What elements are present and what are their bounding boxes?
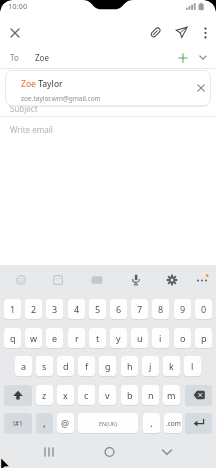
staticText: 6 xyxy=(116,303,122,315)
button[interactable] xyxy=(50,272,66,288)
button[interactable] xyxy=(148,25,163,40)
staticText: x xyxy=(63,389,68,401)
staticText: p xyxy=(201,332,207,344)
button[interactable]: r xyxy=(68,328,85,348)
button[interactable]: l xyxy=(184,356,201,376)
button[interactable] xyxy=(36,443,62,461)
staticText: e xyxy=(52,332,58,344)
staticText: 0 xyxy=(201,303,207,315)
staticText: u xyxy=(137,332,143,344)
staticText: o xyxy=(180,332,186,344)
button[interactable] xyxy=(196,50,210,64)
button[interactable]: o xyxy=(174,328,191,348)
button[interactable]: u xyxy=(131,328,148,348)
button[interactable]: m xyxy=(163,385,180,405)
button[interactable]: 9 xyxy=(174,299,191,319)
button[interactable]: 3 xyxy=(46,299,63,319)
button[interactable]: 2 xyxy=(25,299,42,319)
button[interactable] xyxy=(164,272,180,288)
button[interactable]: v xyxy=(99,385,116,405)
button[interactable]: y xyxy=(110,328,127,348)
button[interactable]: 8 xyxy=(152,299,169,319)
button[interactable] xyxy=(200,25,211,41)
button[interactable] xyxy=(185,385,212,405)
staticText: s xyxy=(42,360,47,372)
staticText: Subject xyxy=(10,103,38,114)
button[interactable]: p xyxy=(195,328,212,348)
staticText: 8 xyxy=(158,303,164,315)
button[interactable]: q xyxy=(4,328,21,348)
staticText: v xyxy=(105,389,110,401)
button[interactable]: g xyxy=(99,356,116,376)
staticText: g xyxy=(105,360,111,372)
button[interactable]: 6 xyxy=(110,299,127,319)
button[interactable]: . xyxy=(143,413,160,433)
staticText: a xyxy=(21,360,27,372)
button[interactable]: .com xyxy=(164,413,182,433)
staticText: . xyxy=(150,416,153,430)
staticText: 5 xyxy=(95,303,101,315)
button[interactable] xyxy=(89,272,105,288)
button[interactable]: k xyxy=(163,356,180,376)
button[interactable]: a xyxy=(15,356,32,376)
button[interactable]: j xyxy=(142,356,159,376)
staticText: h xyxy=(127,360,133,372)
staticText: i xyxy=(159,332,162,344)
button[interactable] xyxy=(13,272,29,288)
button[interactable]: 4 xyxy=(68,299,85,319)
button[interactable] xyxy=(174,25,190,41)
button[interactable] xyxy=(155,443,179,461)
button[interactable] xyxy=(128,272,144,288)
button[interactable]: i xyxy=(152,328,169,348)
button[interactable]: 5 xyxy=(89,299,106,319)
staticText: n xyxy=(148,389,154,401)
staticText: 10:00 xyxy=(8,1,28,11)
staticText: 2 xyxy=(31,303,37,315)
button[interactable]: @ xyxy=(57,413,74,433)
staticText: k xyxy=(169,360,174,372)
staticText: 4 xyxy=(74,303,80,315)
button[interactable]: !#1 xyxy=(4,413,32,433)
staticText: 9 xyxy=(180,303,186,315)
button[interactable] xyxy=(194,272,210,288)
button[interactable] xyxy=(175,50,191,66)
button[interactable] xyxy=(194,81,208,95)
button[interactable]: d xyxy=(57,356,74,376)
button[interactable]: w xyxy=(25,328,42,348)
staticText: w xyxy=(30,332,38,344)
button[interactable]: EN(UK) xyxy=(78,413,138,433)
staticText: Zoe xyxy=(35,52,49,63)
button[interactable] xyxy=(97,443,122,461)
button[interactable]: e xyxy=(46,328,63,348)
staticText: Write email xyxy=(10,124,53,135)
button[interactable]: t xyxy=(89,328,106,348)
staticText: f xyxy=(85,360,89,372)
button[interactable]: 1 xyxy=(4,299,21,319)
staticText: y xyxy=(116,332,121,344)
button[interactable]: n xyxy=(142,385,159,405)
button[interactable]: c xyxy=(78,385,95,405)
button[interactable]: 0 xyxy=(195,299,212,319)
button[interactable]: x xyxy=(57,385,74,405)
button[interactable] xyxy=(4,385,32,405)
button[interactable]: Zoe Taylor xyxy=(5,70,211,106)
staticText: m xyxy=(167,389,176,401)
button[interactable]: f xyxy=(78,356,95,376)
staticText: !#1 xyxy=(13,419,23,428)
staticText: t xyxy=(96,332,100,344)
button[interactable] xyxy=(185,413,212,433)
staticText: , xyxy=(43,416,46,430)
staticText: EN(UK) xyxy=(99,420,117,427)
button[interactable]: , xyxy=(36,413,53,433)
staticText: 7 xyxy=(137,303,143,315)
button[interactable]: 7 xyxy=(131,299,148,319)
staticText: zoe.taylor.wm@gmail.com xyxy=(21,94,101,103)
staticText: Zoe Taylor xyxy=(21,78,63,90)
button[interactable]: z xyxy=(36,385,53,405)
button[interactable]: h xyxy=(121,356,138,376)
staticText: 3 xyxy=(52,303,58,315)
button[interactable]: s xyxy=(36,356,53,376)
button[interactable] xyxy=(7,25,23,41)
button[interactable]: b xyxy=(121,385,138,405)
staticText: To xyxy=(10,52,19,63)
